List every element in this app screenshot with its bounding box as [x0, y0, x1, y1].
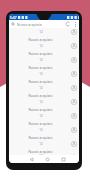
staticText: Nuovo acquisto	[28, 121, 53, 125]
staticText: Nuovo acquisto	[28, 65, 53, 69]
button[interactable]: 12	[9, 28, 79, 35]
staticText: 12	[39, 72, 43, 76]
staticText: Nuovo acquisto	[17, 22, 42, 27]
staticText: Nuovo acquisto	[28, 107, 53, 111]
button[interactable]: Nuovo acquisto	[9, 105, 79, 112]
button[interactable]: 12	[9, 140, 79, 147]
button[interactable]: Recents	[59, 155, 67, 163]
staticText: Nuovo acquisto	[28, 135, 53, 139]
staticText: Nuovo acquisto	[28, 93, 53, 97]
staticText: Nuovo acquisto	[28, 149, 53, 153]
staticText: 12	[39, 86, 43, 90]
staticText: 5:47	[10, 15, 17, 20]
button[interactable]: Add	[9, 20, 17, 28]
button[interactable]: 12	[9, 154, 79, 155]
staticText: Nuovo acquisto	[28, 51, 53, 55]
button[interactable]: Refresh	[64, 20, 72, 28]
button[interactable]: 12	[9, 56, 79, 63]
button[interactable]: Back	[27, 155, 35, 163]
button[interactable]: Nuovo acquisto	[9, 35, 79, 42]
staticText: 12	[39, 114, 43, 118]
button[interactable]: 12	[9, 98, 79, 105]
button[interactable]: Nuovo acquisto	[9, 91, 79, 98]
button[interactable]: Nuovo acquisto	[9, 133, 79, 140]
button[interactable]: Nuovo acquisto	[9, 63, 79, 70]
button[interactable]: Home	[43, 155, 51, 163]
staticText: 12	[39, 30, 43, 34]
button[interactable]: 12	[9, 126, 79, 133]
button[interactable]: 12	[9, 70, 79, 77]
staticText: 12	[39, 100, 43, 104]
staticText: Nuovo acquisto	[28, 37, 53, 41]
button[interactable]: Nuovo acquisto	[9, 119, 79, 126]
button[interactable]: Nuovo acquisto	[9, 147, 79, 154]
staticText: 12	[39, 58, 43, 62]
staticText: Nuovo acquisto	[28, 79, 53, 83]
button[interactable]: 12	[9, 112, 79, 119]
button[interactable]: Nuovo acquisto	[9, 49, 79, 56]
button[interactable]: More options	[72, 20, 78, 28]
button[interactable]: Nuovo acquisto	[9, 77, 79, 84]
staticText: 12	[39, 142, 43, 146]
staticText: 12	[39, 44, 43, 48]
button[interactable]: 12	[9, 84, 79, 91]
staticText: 12	[39, 154, 43, 155]
button[interactable]: 12	[9, 42, 79, 49]
staticText: 12	[39, 128, 43, 132]
